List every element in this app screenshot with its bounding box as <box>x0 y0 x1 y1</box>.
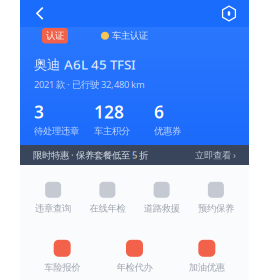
staticText: 违章查询 <box>35 203 71 214</box>
staticText: 车险报价 <box>44 262 80 273</box>
button[interactable]: 年检代办 <box>98 241 171 272</box>
button[interactable]: 3 <box>34 104 94 134</box>
staticText: 128 <box>94 100 124 123</box>
button[interactable]: 在线年检 <box>80 183 134 213</box>
staticText: 车主认证 <box>112 30 148 41</box>
staticText: 年检代办 <box>116 262 152 273</box>
staticText: 认证 <box>46 30 64 41</box>
button[interactable]: 车险报价 <box>26 241 98 272</box>
button[interactable]: Back <box>26 0 54 27</box>
button[interactable]: 预约保养 <box>189 183 243 213</box>
staticText: 在线年检 <box>89 203 125 214</box>
staticText: 奥迪 A6L 45 TFSI <box>34 55 136 73</box>
button[interactable]: Settings <box>215 0 243 27</box>
staticText: 道路救援 <box>144 203 180 214</box>
staticText: 待处理违章 <box>34 125 79 137</box>
staticText: 立即查看 › <box>195 149 236 161</box>
staticText: 2021 款 · 已行驶 32,480 km <box>34 78 145 91</box>
button[interactable]: 道路救援 <box>134 183 189 213</box>
button[interactable]: 加油优惠 <box>171 241 243 272</box>
staticText: 预约保养 <box>198 203 234 214</box>
staticText: 加油优惠 <box>189 262 225 273</box>
button[interactable]: 128 <box>94 104 154 134</box>
staticText: 3 <box>34 100 44 123</box>
staticText: 限时特惠 · 保养套餐低至 5 折 <box>33 149 148 161</box>
staticText: 优惠券 <box>154 125 181 137</box>
staticText: 车主积分 <box>94 125 130 137</box>
button[interactable]: 限时特惠 · 保养套餐低至 5 折 <box>20 145 249 165</box>
staticText: 6 <box>154 100 164 123</box>
button[interactable]: 6 <box>154 104 214 134</box>
button[interactable]: 违章查询 <box>26 183 80 213</box>
